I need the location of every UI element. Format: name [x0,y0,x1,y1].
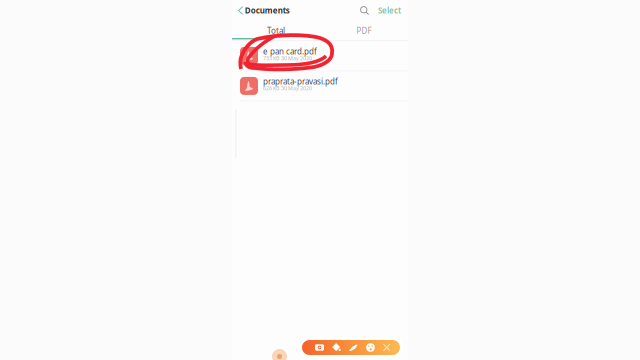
button[interactable]: Search [357,3,372,18]
button[interactable]: Total [232,21,320,36]
button[interactable]: Documents [232,0,296,21]
button[interactable]: Close [383,344,390,351]
staticText: praprata-pravasi.pdf [263,76,338,87]
button[interactable]: e pan card.pdf [232,41,408,71]
button[interactable]: Screenshot [315,344,324,351]
staticText: Documents [245,5,290,16]
staticText: Select [378,5,401,16]
staticText: 733 KB 30 May 2020 [263,55,312,62]
button[interactable]: Select [372,0,408,21]
button[interactable]: PDF [320,21,408,36]
staticText: Total [267,25,285,36]
button[interactable]: praprata-pravasi.pdf [232,71,408,101]
staticText: 626 KB 30 May 2020 [263,85,312,92]
staticText: e pan card.pdf [263,46,317,57]
staticText: PDF [356,25,371,36]
button[interactable]: Pen [349,344,357,351]
button[interactable]: Sticker [365,342,375,352]
button[interactable]: Brush [332,343,341,352]
